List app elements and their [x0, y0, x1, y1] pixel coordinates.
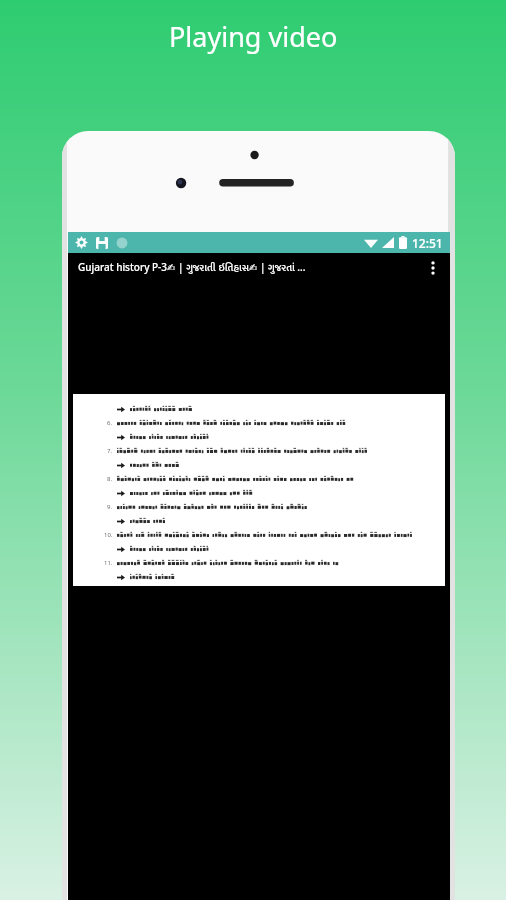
staticText: 11.	[104, 559, 113, 567]
staticText: 6.	[107, 419, 113, 427]
staticText: 9.	[107, 503, 113, 511]
button[interactable]: More options	[420, 255, 446, 281]
staticText: Gujarat history P-3✍ | ગુજરાતી ઇતિહાસ✍ |…	[78, 260, 306, 277]
staticText: Playing video	[169, 18, 338, 55]
staticText: 12:51	[412, 235, 443, 251]
staticText: 8.	[107, 475, 113, 483]
button[interactable]: Gujarat history P-3✍ | ગુજરાતી ઇતિહાસ✍ |…	[78, 260, 420, 277]
staticText: 10.	[104, 531, 113, 539]
staticText: 7.	[107, 447, 113, 455]
